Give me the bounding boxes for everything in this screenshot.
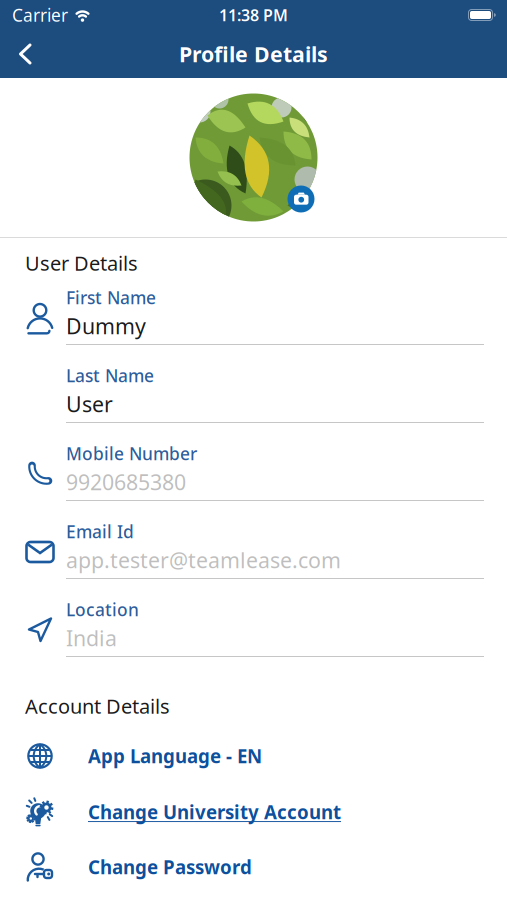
button[interactable]: Mobile Number xyxy=(25,446,485,501)
button[interactable]: Change photo xyxy=(287,185,314,212)
button[interactable]: Last Name xyxy=(25,368,485,423)
staticText: Mobile Number xyxy=(66,442,197,465)
staticText: User xyxy=(66,390,113,418)
staticText: Account Details xyxy=(25,693,170,719)
button[interactable]: Back xyxy=(0,43,33,65)
staticText: Change Password xyxy=(88,855,252,879)
staticText: Last Name xyxy=(66,364,154,387)
staticText: Change University Account xyxy=(88,800,341,824)
staticText: Profile Details xyxy=(179,40,328,68)
staticText: Email Id xyxy=(66,520,134,543)
staticText: Location xyxy=(66,598,139,621)
staticText: Dummy xyxy=(66,312,146,340)
staticText: app.tester@teamlease.com xyxy=(66,546,341,574)
button[interactable]: Location xyxy=(25,602,485,657)
staticText: App Language - EN xyxy=(88,744,262,768)
button[interactable]: Change Password xyxy=(25,854,485,880)
staticText: User Details xyxy=(25,250,138,276)
staticText: 11:38 PM xyxy=(219,4,288,26)
staticText: Carrier xyxy=(12,3,68,26)
button[interactable]: Email Id xyxy=(25,524,485,579)
button[interactable]: App Language - EN xyxy=(25,743,485,769)
staticText: India xyxy=(66,624,117,652)
staticText: 9920685380 xyxy=(66,468,186,496)
button[interactable]: Change University Account xyxy=(25,799,485,825)
button[interactable]: First Name xyxy=(25,290,485,345)
staticText: First Name xyxy=(66,286,156,309)
